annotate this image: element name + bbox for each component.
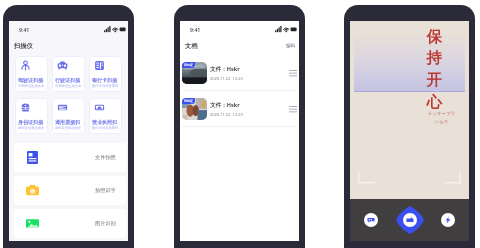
staticText: 拍照识字 <box>95 187 116 194</box>
staticText: ラッキープリ ンセス <box>427 111 456 124</box>
staticText: 2020.11.22 12:23 <box>210 76 243 81</box>
button[interactable]: 身份证扫描 <box>15 98 48 134</box>
staticText: 身份证扫描 <box>18 119 43 125</box>
staticText: 保 持 开 心 <box>426 27 442 112</box>
staticText: 银行卡信息查看导出 <box>92 84 121 88</box>
other: More options <box>289 70 297 76</box>
staticText: 9:41 <box>190 26 201 33</box>
button[interactable]: 拍照识字 <box>14 176 126 205</box>
staticText: 通用票据扫描 <box>55 119 84 125</box>
staticText: 编辑 <box>286 43 296 49</box>
staticText: 可驾驶证生成文本 <box>55 84 82 88</box>
button[interactable]: 通用票据扫描 <box>52 98 85 134</box>
staticText: 文件拍照 <box>95 154 116 161</box>
button[interactable]: Capture <box>395 205 425 235</box>
staticText: 文件：Hskr <box>210 101 240 109</box>
staticText: 身份证信息生成文本 <box>55 126 84 130</box>
button[interactable]: 驾驶证扫描 <box>15 56 48 92</box>
other: More options <box>289 106 297 112</box>
staticText: 银行卡扫描 <box>92 77 117 83</box>
staticText: 可驾驶证生成文本 <box>18 84 45 88</box>
staticText: 行驶证扫描 <box>55 77 80 83</box>
button[interactable]: 驾驶证 <box>180 91 299 126</box>
button[interactable]: 营业执照扫描 <box>89 98 122 134</box>
staticText: 驾驶证扫描 <box>18 77 43 83</box>
button[interactable]: 文件拍照 <box>14 143 126 172</box>
button[interactable]: 编辑 <box>285 42 297 50</box>
button[interactable]: 身份证 <box>180 55 299 90</box>
staticText: 扫描仪 <box>14 42 33 50</box>
staticText: 9:41 <box>19 26 30 33</box>
button[interactable]: 行驶证扫描 <box>52 56 85 92</box>
button[interactable]: 银行卡扫描 <box>89 56 122 92</box>
staticText: 文件：Hskr <box>210 65 240 73</box>
staticText: 文档 <box>185 42 198 50</box>
staticText: 驾驶证 <box>184 99 193 103</box>
staticText: 2020.11.22 12:23 <box>210 112 243 117</box>
staticText: 银行卡信息查看导出 <box>92 126 121 130</box>
staticText: 营业执照扫描 <box>92 119 121 125</box>
staticText: 图片识别 <box>95 220 116 227</box>
staticText: 身份证 <box>184 63 193 67</box>
button[interactable]: 图片识别 <box>14 209 126 238</box>
staticText: 身份证信息生成文本 <box>18 126 47 130</box>
button[interactable]: Flash <box>441 213 455 227</box>
button[interactable]: Gallery <box>364 213 378 227</box>
